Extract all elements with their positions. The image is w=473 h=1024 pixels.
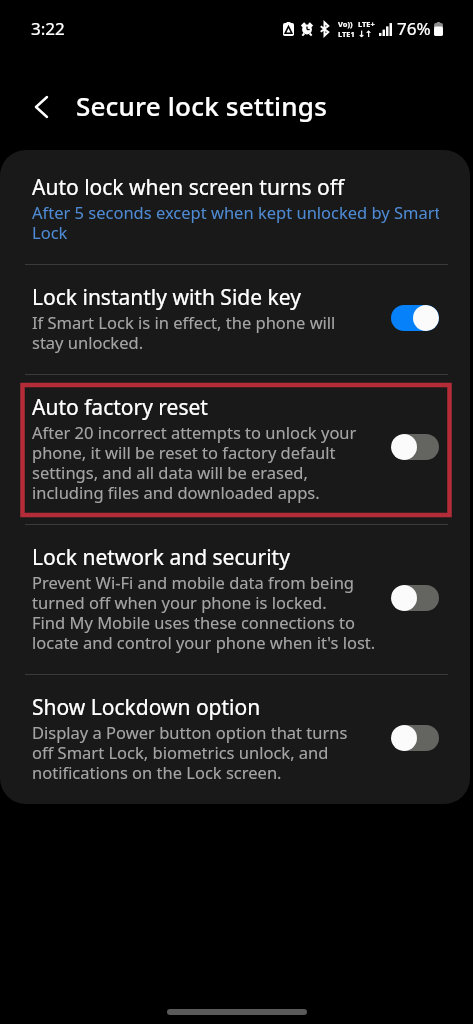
staticText: ↓↑ [358,29,373,39]
staticText: Vo)) [338,19,353,29]
staticText: Lock network and security [32,543,290,572]
button[interactable]: Switch off [391,725,439,751]
button[interactable]: Back [18,84,64,130]
button[interactable]: Show Lockdown option [0,675,470,804]
staticText: Prevent Wi-Fi and mobile data from being… [32,573,376,653]
button[interactable]: Switch off [391,585,439,611]
staticText: LTE+ [358,19,375,29]
staticText: Auto factory reset [32,393,208,422]
staticText: LTE1 [338,29,355,39]
staticText: Auto lock when screen turns off [32,173,345,202]
staticText: After 20 incorrect attempts to unlock yo… [32,423,357,503]
button[interactable]: Auto lock when screen turns off [0,155,470,264]
staticText: Show Lockdown option [32,693,261,722]
button[interactable]: Lock instantly with Side key [0,265,470,374]
button[interactable]: Switch on [391,305,439,331]
button[interactable]: Auto factory reset [0,375,470,524]
staticText: After 5 seconds except when kept unlocke… [32,203,439,243]
staticText: 76% [397,17,431,40]
button[interactable]: Lock network and security [0,525,470,674]
staticText: If Smart Lock is in effect, the phone wi… [32,313,336,353]
staticText: Display a Power button option that turns… [32,723,348,783]
staticText: 3:22 [31,17,65,40]
staticText: Lock instantly with Side key [32,283,301,312]
staticText: Secure lock settings [76,88,327,123]
button[interactable]: Switch off [391,434,439,460]
